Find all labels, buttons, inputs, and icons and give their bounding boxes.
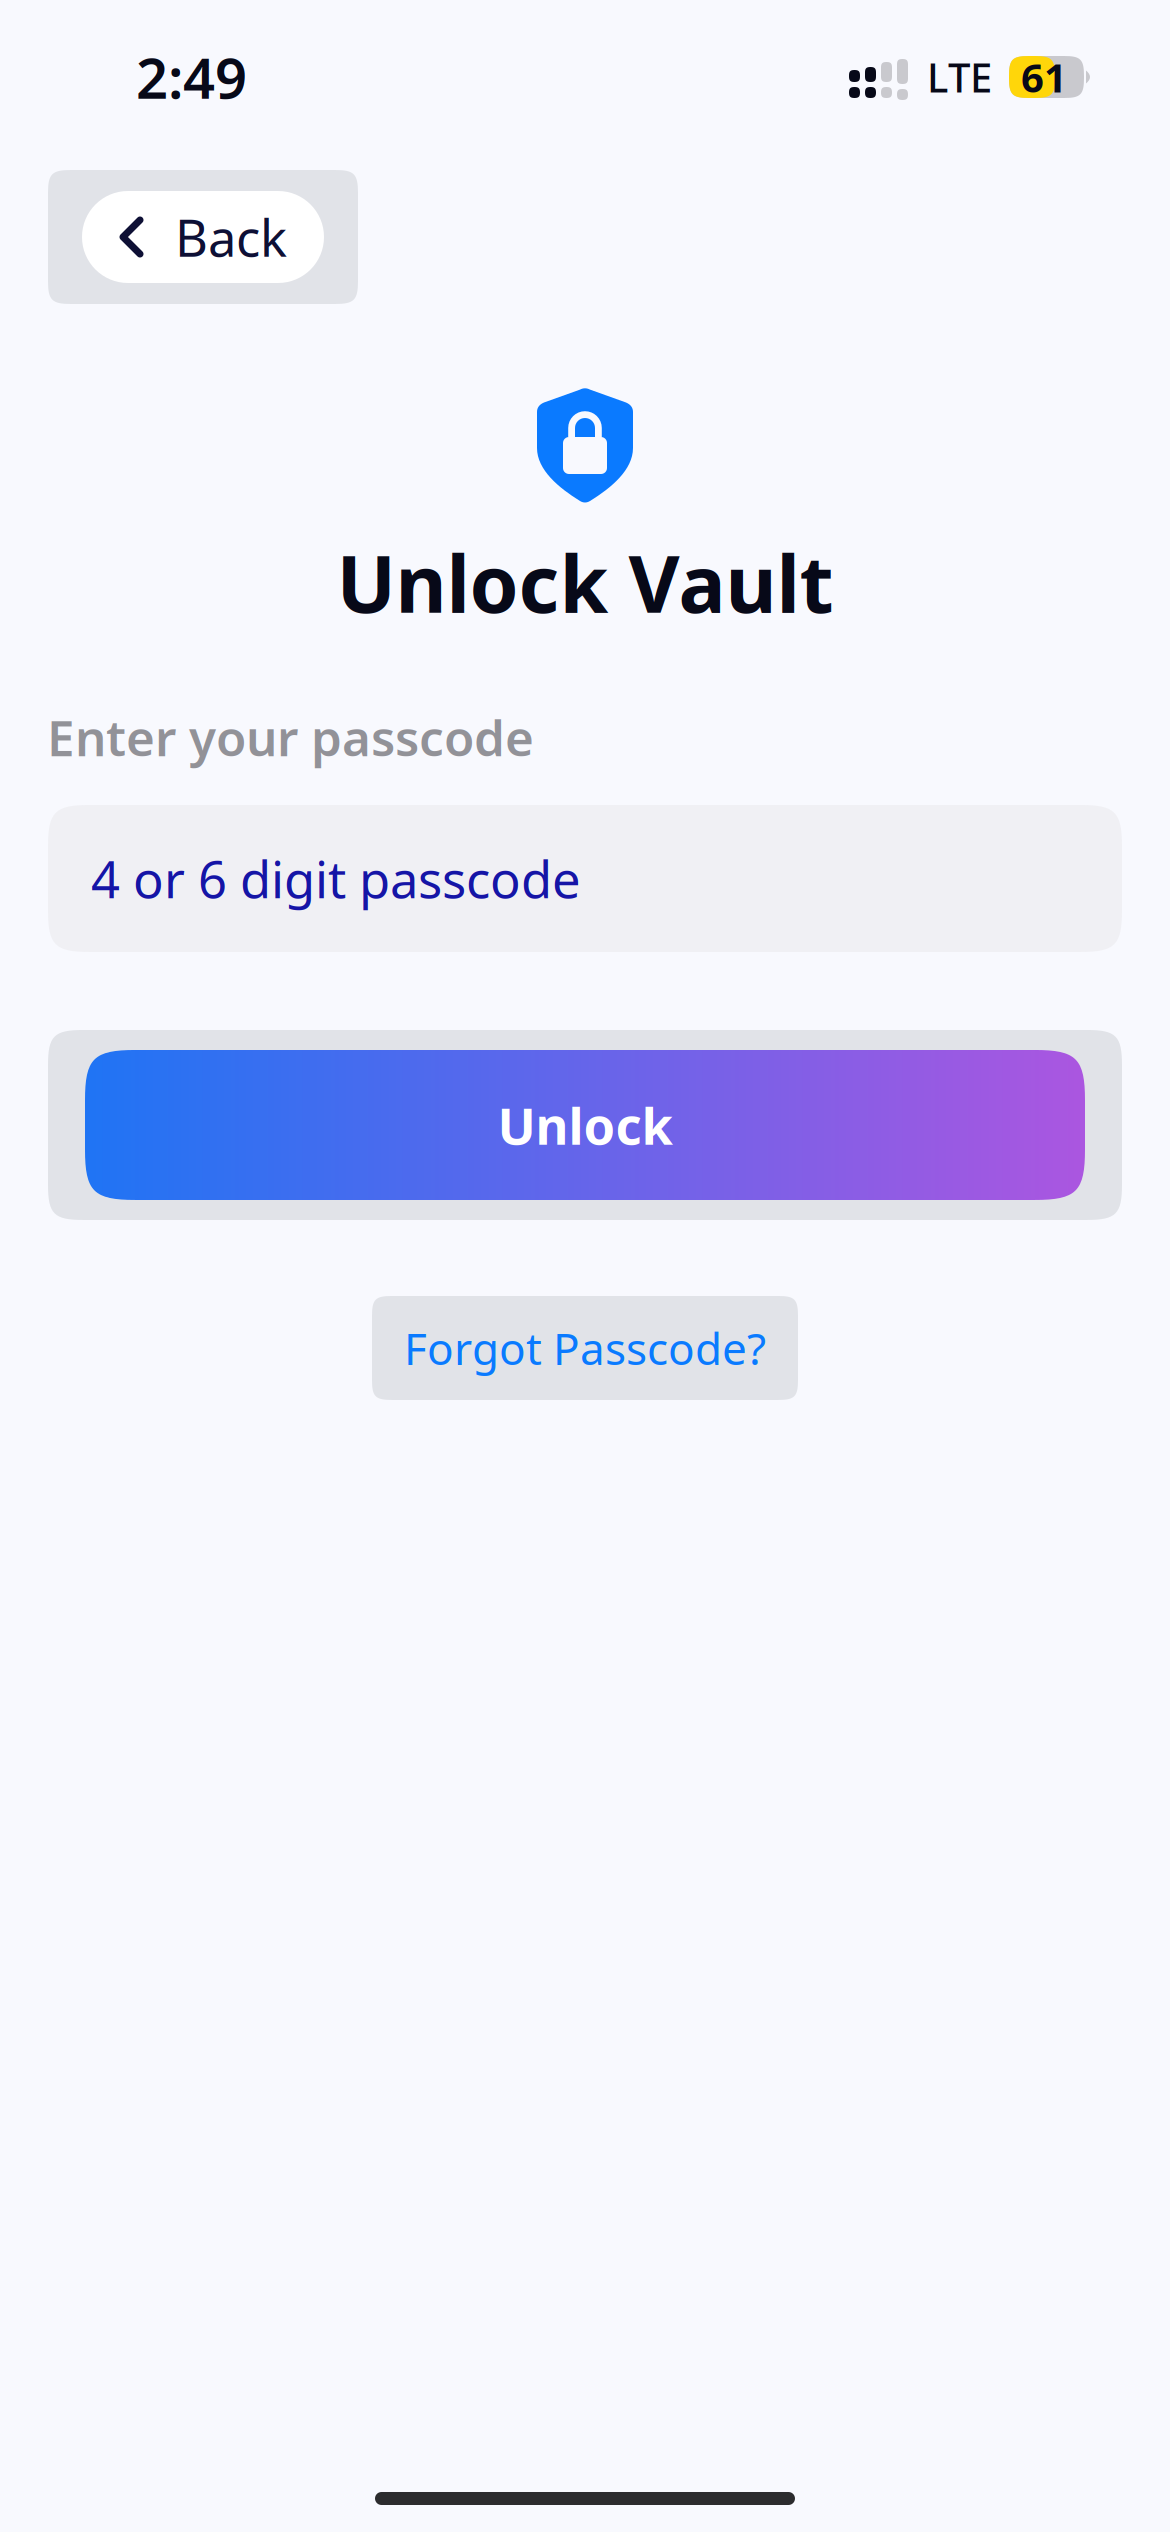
staticText: Enter your passcode xyxy=(47,704,534,770)
staticText: Unlock xyxy=(497,1091,672,1159)
staticText: 2:49 xyxy=(136,40,247,114)
staticText: Back xyxy=(175,203,287,271)
button[interactable]: Forgot Passcode? xyxy=(372,1296,798,1400)
button[interactable]: Unlock xyxy=(48,1030,1122,1220)
staticText: Unlock Vault xyxy=(336,530,833,634)
staticText: Forgot Passcode? xyxy=(404,1319,766,1377)
staticText: 61 xyxy=(1021,50,1067,103)
button[interactable]: Back xyxy=(48,170,358,304)
staticText: 4 or 6 digit passcode xyxy=(91,845,581,912)
staticText: LTE xyxy=(927,50,992,103)
